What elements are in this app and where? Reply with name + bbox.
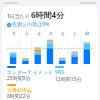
staticText: 仕事効率化 <box>7 87 32 93</box>
staticText: 12時間13分 <box>55 76 82 83</box>
button[interactable]: 1日当たり <box>2 6 98 100</box>
staticText: 1日当たり <box>7 13 31 20</box>
button[interactable]: 月 <box>8 30 19 37</box>
staticText: エンターテイメント <box>7 69 53 75</box>
button[interactable]: 日 <box>82 30 92 37</box>
button[interactable]: 仕事効率化 <box>7 84 55 100</box>
staticText: SNS <box>55 69 65 76</box>
button[interactable]: 先週との差は8% <box>7 21 50 28</box>
staticText: 土 <box>73 31 77 36</box>
staticText: 火 <box>25 31 29 36</box>
staticText: 6時間4分 <box>31 9 65 20</box>
button[interactable]: 火 <box>21 30 32 37</box>
staticText: 先週との差は8% <box>12 21 50 28</box>
staticText: 25時間5分 <box>7 75 31 82</box>
staticText: 日 <box>85 31 89 36</box>
button[interactable]: 土 <box>70 30 80 37</box>
staticText: 月 <box>12 31 16 36</box>
button[interactable]: エンターテイメント <box>7 66 55 82</box>
staticText: 木 <box>49 31 53 36</box>
button[interactable]: 水 <box>34 30 44 37</box>
staticText: 水 <box>37 31 41 36</box>
button[interactable]: 木 <box>46 30 56 37</box>
button[interactable]: 金 <box>58 30 68 37</box>
staticText: 金 <box>61 31 65 36</box>
button[interactable]: SNS <box>55 66 93 83</box>
staticText: 8時間22分 <box>7 93 31 100</box>
